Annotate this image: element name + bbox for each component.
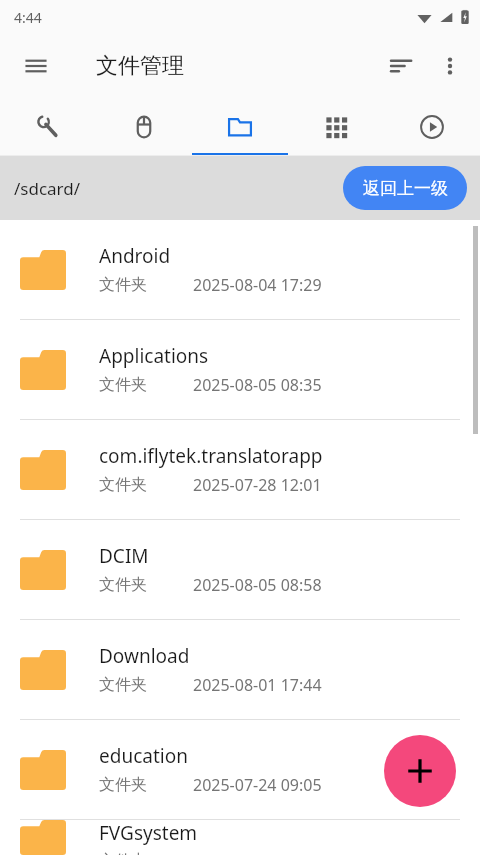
button[interactable]: Apps [288,98,384,156]
staticText: 文件夹 [99,675,147,695]
staticText: 2025-08-04 17:29 [193,274,322,296]
staticText: 文件管理 [96,52,184,80]
staticText: 2025-08-05 08:58 [193,574,322,596]
staticText: 文件夹 [99,575,147,595]
staticText: Applications [99,343,209,369]
button[interactable]: 返回上一级 [343,166,467,210]
staticText: 4:44 [14,8,42,27]
staticText: com.iflytek.translatorapp [99,443,323,469]
staticText: Android [99,243,171,269]
button[interactable]: More options [426,42,474,90]
button[interactable]: Files [192,98,288,156]
staticText: 文件夹 [99,851,147,855]
staticText: 文件夹 [99,275,147,295]
staticText: /sdcard/ [14,177,81,200]
staticText: education [99,743,188,769]
button[interactable]: education [0,720,480,819]
button[interactable]: Menu [12,42,60,90]
button[interactable]: FVGsystem [0,820,480,855]
staticText: 文件夹 [99,375,147,395]
button[interactable]: Media [384,98,480,156]
button[interactable]: Add [384,735,456,807]
staticText: 返回上一级 [363,178,448,199]
button[interactable]: Mouse [96,98,192,156]
staticText: DCIM [99,543,149,569]
button[interactable]: Tools [0,98,96,156]
button[interactable]: com.iflytek.translatorapp [0,420,480,519]
button[interactable]: Android [0,220,480,319]
button[interactable]: Sort [378,42,426,90]
staticText: Download [99,643,190,669]
button[interactable]: Applications [0,320,480,419]
staticText: 2025-08-01 17:44 [193,674,322,696]
staticText: 文件夹 [99,475,147,495]
staticText: FVGsystem [99,820,198,846]
staticText: 文件夹 [99,775,147,795]
button[interactable]: DCIM [0,520,480,619]
button[interactable]: Download [0,620,480,719]
staticText: 2025-07-28 12:01 [193,474,322,496]
staticText: 2025-07-24 09:05 [193,774,322,796]
staticText: 2025-08-05 08:35 [193,374,322,396]
